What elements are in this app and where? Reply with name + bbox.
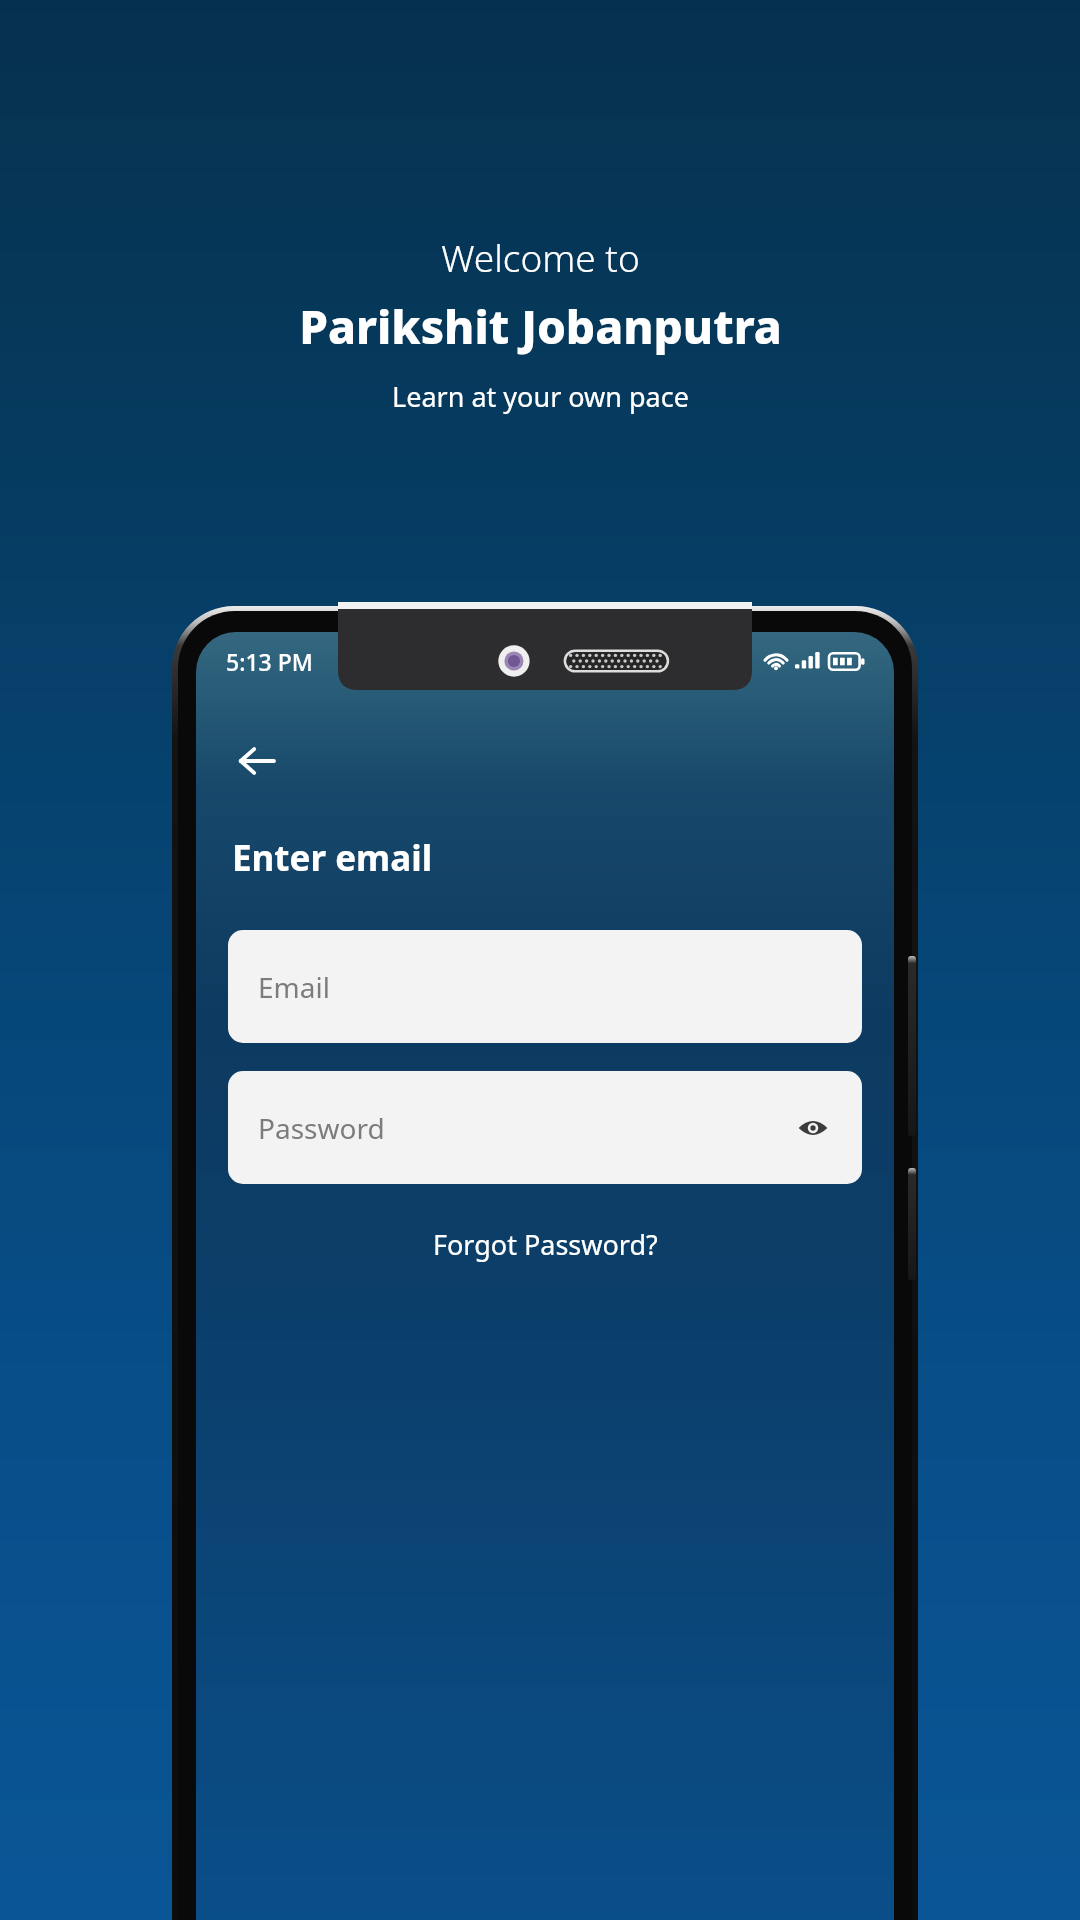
staticText: Password — [258, 1109, 385, 1147]
button[interactable]: Password — [228, 1071, 862, 1184]
button[interactable]: Email — [228, 930, 862, 1043]
button[interactable]: Back — [228, 732, 286, 790]
staticText: Enter email — [232, 834, 433, 882]
staticText: Parikshit Jobanputra — [299, 295, 782, 358]
staticText: Welcome to — [441, 232, 640, 282]
button[interactable]: Forgot Password? — [417, 1218, 674, 1271]
staticText: Forgot Password? — [433, 1226, 658, 1263]
staticText: Learn at your own pace — [392, 378, 689, 415]
staticText: Email — [258, 968, 330, 1006]
button[interactable]: Show password — [790, 1105, 836, 1151]
staticText: 5:13 PM — [226, 646, 313, 677]
